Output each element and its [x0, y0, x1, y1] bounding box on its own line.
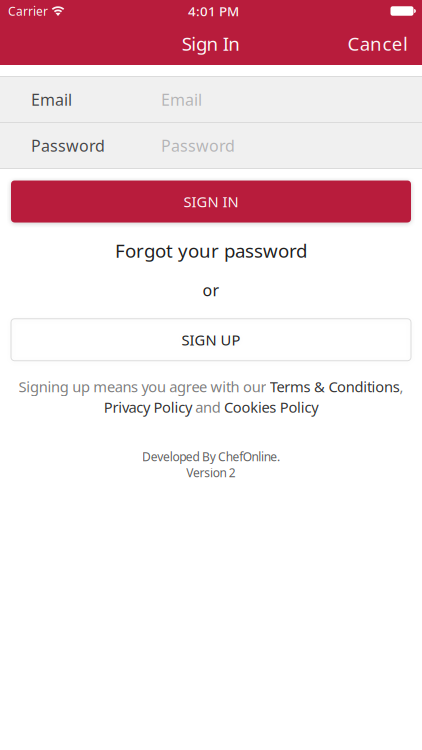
staticText: SIGN UP: [181, 330, 240, 349]
staticText: Signing up means you agree with our Term…: [19, 377, 403, 396]
button[interactable]: Email: [0, 77, 422, 122]
button[interactable]: Privacy Policy and Cookies Policy: [104, 397, 318, 417]
staticText: Forgot your password: [115, 238, 307, 263]
staticText: or: [202, 279, 219, 301]
staticText: Password: [161, 135, 235, 156]
staticText: Developed By ChefOnline.: [142, 449, 280, 465]
button[interactable]: SIGN IN: [11, 180, 411, 222]
button[interactable]: Password: [0, 123, 422, 168]
staticText: Email: [161, 89, 202, 110]
staticText: Cancel: [347, 31, 408, 56]
staticText: Carrier: [8, 3, 48, 19]
button[interactable]: Signing up means you agree with our Term…: [19, 377, 403, 396]
staticText: Privacy Policy and Cookies Policy: [104, 397, 318, 417]
staticText: 4:01 PM: [188, 2, 239, 20]
staticText: Password: [31, 135, 105, 156]
button[interactable]: Forgot your password: [115, 238, 307, 262]
staticText: Version 2: [186, 465, 236, 480]
staticText: Sign In: [182, 31, 240, 56]
staticText: SIGN IN: [183, 192, 238, 211]
button[interactable]: SIGN UP: [11, 319, 411, 361]
staticText: Email: [31, 89, 72, 110]
button[interactable]: Cancel: [328, 22, 422, 65]
